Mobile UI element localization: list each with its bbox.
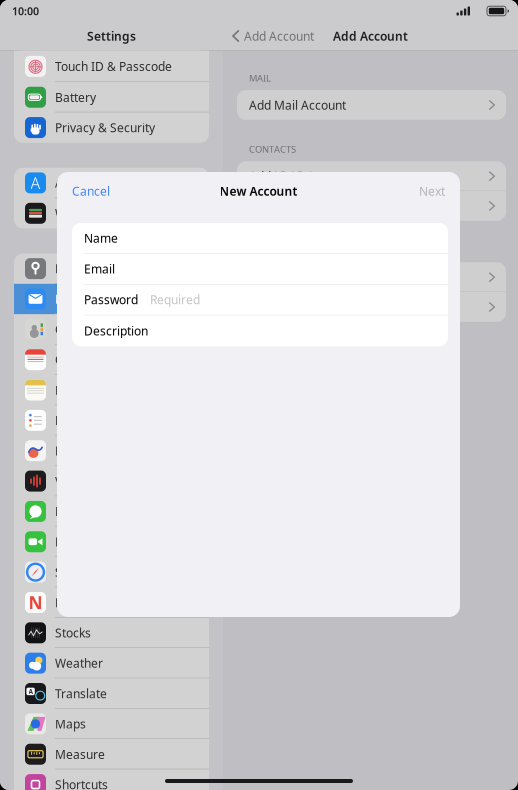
staticText: Next — [419, 183, 445, 199]
button[interactable]: Weather — [14, 648, 209, 678]
button[interactable]: Email — [72, 254, 448, 285]
staticText: Stocks — [55, 625, 91, 641]
staticText: Description — [84, 323, 148, 339]
button[interactable]: Notes — [14, 375, 209, 405]
staticText: Passwords — [55, 261, 115, 277]
button[interactable]: Calendar — [14, 344, 209, 375]
staticText: A — [29, 687, 33, 696]
staticText: Maps — [55, 716, 86, 732]
staticText: Reminders — [55, 412, 115, 428]
button[interactable]: Password — [72, 285, 448, 315]
button[interactable]: Cancel — [57, 175, 125, 207]
staticText: Contacts — [55, 321, 104, 337]
button[interactable]: N — [14, 587, 209, 618]
button[interactable]: Add LDAP Account — [237, 161, 506, 191]
staticText: Battery — [55, 89, 96, 105]
staticText: Add CalDAV Account — [249, 269, 363, 285]
staticText: Email — [84, 261, 115, 277]
staticText: Name — [84, 230, 118, 246]
button[interactable]: Safari — [14, 557, 209, 587]
staticText: Voice Memos — [55, 473, 130, 489]
button[interactable]: Passwords — [14, 253, 209, 284]
button[interactable]: Freeform — [14, 435, 209, 466]
staticText: A — [30, 172, 40, 193]
staticText: Required — [150, 292, 200, 308]
button[interactable]: Add CardDAV Account — [237, 191, 506, 221]
staticText: Mail — [55, 291, 79, 307]
button[interactable]: Description — [72, 315, 448, 346]
staticText: Measure — [55, 746, 105, 762]
staticText: FaceTime — [55, 534, 109, 550]
staticText: Notes — [55, 382, 88, 398]
button[interactable]: Touch ID & Passcode — [14, 51, 209, 82]
button[interactable]: Name — [72, 223, 448, 254]
staticText: 10:00 — [12, 4, 39, 18]
staticText: Calendar — [55, 352, 106, 368]
button[interactable]: Add CalDAV Account — [237, 262, 506, 292]
button[interactable]: Contacts — [14, 314, 209, 344]
staticText: App Store — [55, 175, 110, 191]
staticText: New Account — [219, 183, 297, 199]
staticText: Weather — [55, 655, 103, 671]
button[interactable]: Next — [404, 175, 460, 207]
button[interactable]: Shortcuts — [14, 769, 209, 790]
staticText: News — [55, 594, 86, 610]
button[interactable]: Battery — [14, 82, 209, 112]
staticText: Settings — [87, 28, 136, 44]
button[interactable]: Wallet — [14, 198, 209, 228]
button[interactable]: Reminders — [14, 405, 209, 436]
button[interactable]: FaceTime — [14, 527, 209, 557]
button[interactable]: Add Mail Account — [237, 90, 506, 120]
button[interactable]: A — [14, 168, 209, 198]
staticText: CONTACTS — [249, 143, 296, 155]
staticText: CALENDARS — [249, 244, 302, 256]
staticText: Cancel — [72, 183, 110, 199]
button[interactable]: Stocks — [14, 618, 209, 648]
button[interactable]: Maps — [14, 709, 209, 739]
staticText: Password — [84, 292, 138, 308]
staticText: Freeform — [55, 443, 107, 459]
staticText: Add Account — [244, 28, 314, 44]
staticText: Wallet — [55, 205, 90, 221]
button[interactable]: Voice Memos — [14, 466, 209, 496]
staticText: Safari — [55, 564, 88, 580]
staticText: Add Account — [333, 28, 408, 44]
button[interactable]: Add Account — [223, 24, 314, 48]
button[interactable]: A — [14, 678, 209, 709]
staticText: Add LDAP Account — [249, 168, 352, 184]
staticText: Touch ID & Passcode — [55, 58, 172, 74]
staticText: N — [28, 591, 42, 614]
button[interactable]: Messages — [14, 496, 209, 527]
button[interactable]: Add Subscribed Calendar — [237, 292, 506, 322]
staticText: Shortcuts — [55, 777, 108, 790]
staticText: Translate — [55, 686, 107, 701]
staticText: Privacy & Security — [55, 120, 155, 135]
staticText: MAIL — [249, 72, 271, 84]
button[interactable]: Measure — [14, 739, 209, 769]
button[interactable]: Privacy & Security — [14, 112, 209, 143]
staticText: Messages — [55, 503, 112, 519]
button[interactable]: Mail — [14, 284, 209, 314]
staticText: Add Mail Account — [249, 97, 346, 113]
